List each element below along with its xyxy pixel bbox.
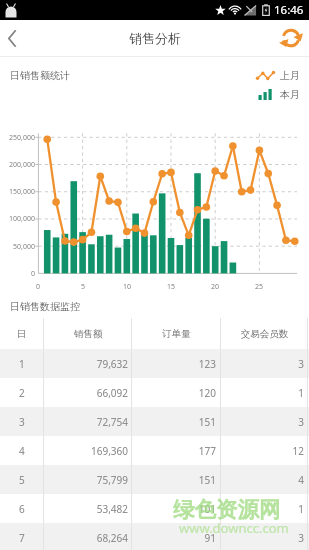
button[interactable]: 日	[0, 318, 309, 349]
staticText: 16:46	[274, 2, 304, 18]
button[interactable]: 5	[0, 465, 309, 494]
staticText: 日销售额统计	[10, 69, 70, 82]
staticText: 169,360	[44, 444, 128, 458]
staticText: 177	[132, 444, 216, 458]
staticText: 250,000	[0, 133, 35, 143]
staticText: 10	[117, 282, 137, 292]
staticText: 4	[221, 473, 304, 487]
staticText: 1	[221, 502, 304, 516]
staticText: 151	[132, 415, 216, 429]
staticText: 2	[19, 386, 25, 400]
staticText: 3	[221, 357, 304, 371]
staticText: 72,754	[44, 415, 128, 429]
staticText: 3	[221, 531, 304, 545]
staticText: 53,482	[44, 502, 128, 516]
staticText: 上月	[280, 69, 300, 82]
staticText: 4	[19, 444, 25, 458]
staticText: 151	[132, 473, 216, 487]
staticText: 120	[132, 386, 216, 400]
staticText: 0	[28, 282, 48, 292]
staticText: 68,264	[44, 531, 128, 545]
staticText: 订单量	[132, 328, 221, 340]
staticText: 交易会员数	[221, 328, 308, 340]
staticText: 20	[205, 282, 225, 292]
staticText: 销售分析	[129, 30, 181, 46]
button[interactable]: 1	[0, 349, 309, 378]
staticText: 销售额	[44, 328, 132, 340]
staticText: 91	[132, 531, 216, 545]
staticText: 7	[19, 531, 25, 545]
staticText: 50,000	[0, 242, 35, 252]
staticText: 日销售数据监控	[10, 300, 80, 313]
staticText: 75,799	[44, 473, 128, 487]
staticText: 3	[19, 415, 25, 429]
staticText: 6	[19, 502, 25, 516]
staticText: 12	[221, 444, 304, 458]
button[interactable]: Back	[0, 20, 24, 56]
button[interactable]: 2	[0, 378, 309, 407]
staticText: 66,092	[44, 386, 128, 400]
staticText: 123	[132, 357, 216, 371]
staticText: 5	[73, 282, 93, 292]
button[interactable]: 6	[0, 494, 309, 523]
staticText: 日	[17, 328, 27, 340]
staticText: www.downcc.com	[179, 519, 289, 537]
staticText: 100,000	[0, 214, 35, 224]
staticText: 79,632	[44, 357, 128, 371]
button[interactable]: 7	[0, 523, 309, 550]
staticText: 3	[221, 415, 304, 429]
staticText: 101	[132, 502, 216, 516]
staticText: 绿色资源网	[173, 496, 281, 523]
staticText: 25	[249, 282, 269, 292]
staticText: 本月	[280, 88, 300, 101]
staticText: 0	[0, 269, 35, 279]
staticText: 200,000	[0, 160, 35, 170]
button[interactable]: 4	[0, 436, 309, 465]
button[interactable]: Refresh	[273, 20, 309, 56]
staticText: 1	[221, 386, 304, 400]
staticText: 15	[161, 282, 181, 292]
button[interactable]: 3	[0, 407, 309, 436]
staticText: 1	[19, 357, 25, 371]
staticText: 150,000	[0, 187, 35, 197]
staticText: 5	[19, 473, 25, 487]
